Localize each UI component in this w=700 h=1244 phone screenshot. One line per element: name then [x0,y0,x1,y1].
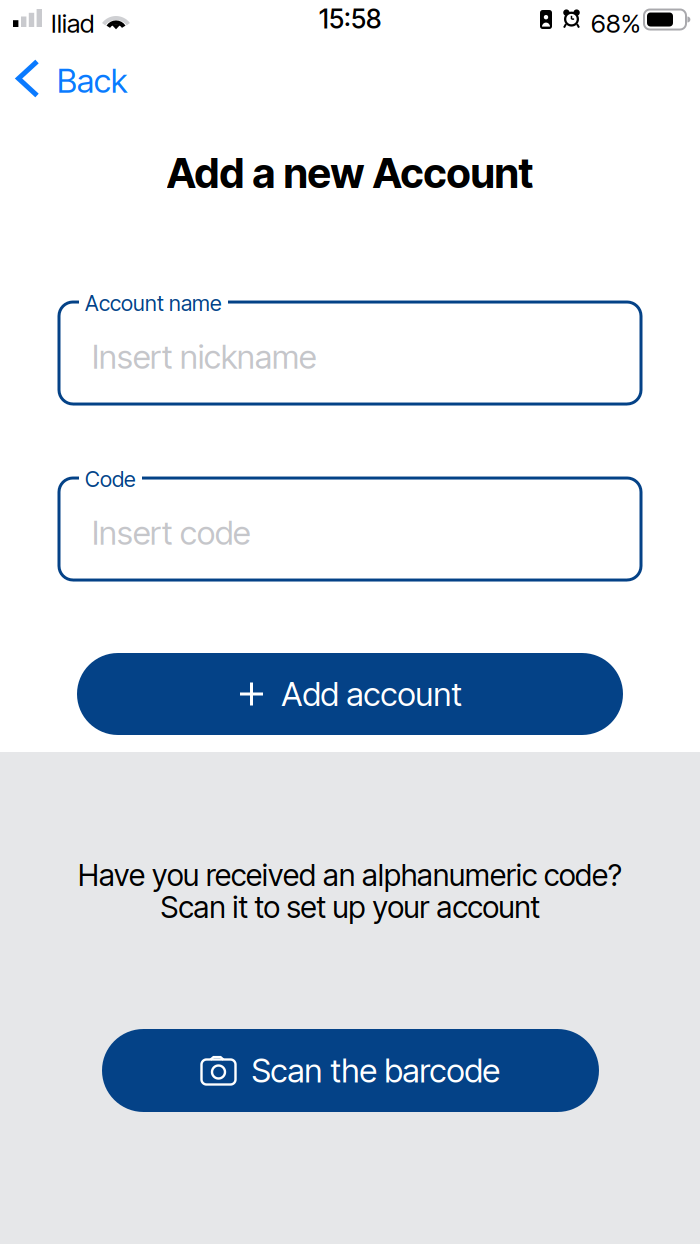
button[interactable]: Insert nickname [59,302,641,404]
staticText: 15:58 [319,3,381,35]
staticText: Account name [85,290,222,316]
button[interactable]: Scan the barcode [102,1029,599,1112]
button[interactable]: Insert code [59,478,641,580]
staticText: Code [85,466,136,492]
button[interactable]: Add account [77,653,623,735]
button[interactable]: Back [0,52,120,104]
staticText: Back [57,61,127,101]
staticText: Have you received an alphanumeric code? [78,857,622,893]
staticText: Scan the barcode [251,1051,499,1090]
staticText: Add a new Account [166,148,533,198]
staticText: Insert code [92,513,250,553]
staticText: Iliad [51,8,94,39]
staticText: 68% [591,8,641,39]
staticText: Scan it to set up your account [160,889,539,925]
staticText: Insert nickname [92,337,316,377]
staticText: Add account [281,674,461,714]
